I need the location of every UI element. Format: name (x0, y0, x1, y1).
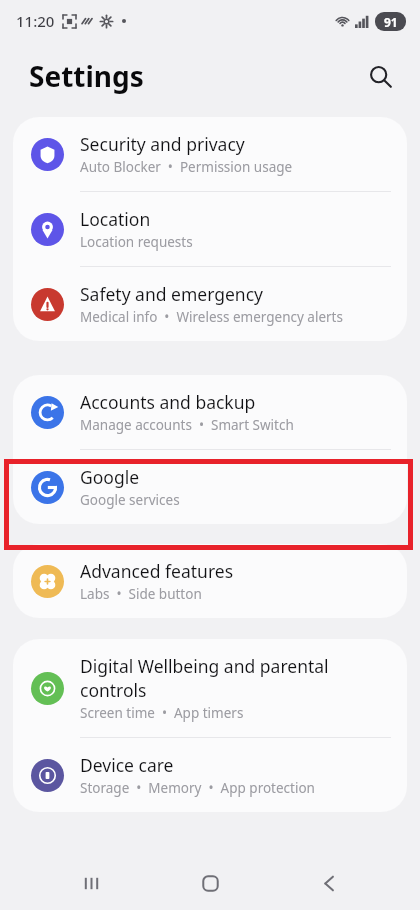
staticText: Location (80, 207, 151, 231)
button[interactable]: Google (13, 450, 407, 524)
button[interactable]: Device care (13, 738, 407, 812)
staticText: Accounts and backup (80, 390, 256, 414)
staticText: 91 (384, 14, 398, 30)
staticText: Screen time • App timers (80, 704, 244, 722)
button[interactable]: Advanced features (13, 544, 407, 618)
button[interactable]: Safety and emergency (13, 267, 407, 341)
staticText: Labs • Side button (80, 585, 202, 603)
staticText: Google services (80, 491, 180, 509)
button[interactable]: Security and privacy (13, 117, 407, 191)
button[interactable]: Home (182, 856, 238, 910)
staticText: Digital Wellbeing and parental controls (80, 654, 389, 702)
staticText: Auto Blocker • Permission usage (80, 158, 293, 176)
staticText: Settings (29, 57, 144, 95)
button[interactable]: Accounts and backup (13, 375, 407, 449)
staticText: Safety and emergency (80, 282, 263, 306)
staticText: Medical info • Wireless emergency alerts (80, 308, 343, 326)
button[interactable]: Back (301, 856, 357, 910)
staticText: Google (80, 465, 140, 489)
button[interactable]: Location (13, 192, 407, 266)
button[interactable]: Search (358, 54, 402, 98)
staticText: Security and privacy (80, 132, 245, 156)
staticText: 11:20 (16, 11, 55, 31)
staticText: Advanced features (80, 559, 234, 583)
staticText: Device care (80, 753, 174, 777)
staticText: Location requests (80, 233, 193, 251)
button[interactable]: Recent apps (63, 856, 119, 910)
staticText: Storage • Memory • App protection (80, 779, 315, 797)
staticText: Manage accounts • Smart Switch (80, 416, 294, 434)
button[interactable]: Digital Wellbeing and parental controls (13, 639, 407, 737)
